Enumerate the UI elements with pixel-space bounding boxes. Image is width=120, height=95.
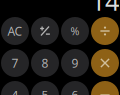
button[interactable]: Divide: [91, 17, 119, 45]
staticText: AC: [7, 23, 22, 39]
button[interactable]: Six: [61, 81, 89, 95]
button[interactable]: Multiply: [91, 49, 119, 77]
button[interactable]: Nine: [61, 49, 89, 77]
staticText: 6: [71, 87, 78, 95]
button[interactable]: Percent: [61, 17, 89, 45]
staticText: 14: [91, 0, 119, 18]
staticText: %: [70, 24, 79, 38]
staticText: 8: [41, 55, 48, 71]
staticText: 4: [11, 87, 18, 95]
button[interactable]: Five: [31, 81, 59, 95]
button[interactable]: Subtract: [91, 81, 119, 95]
button[interactable]: All clear: [1, 17, 29, 45]
button[interactable]: Plus minus: [31, 17, 59, 45]
staticText: 9: [71, 55, 78, 71]
staticText: 5: [41, 87, 48, 95]
button[interactable]: Seven: [1, 49, 29, 77]
button[interactable]: Four: [1, 81, 29, 95]
button[interactable]: Eight: [31, 49, 59, 77]
staticText: 7: [11, 55, 18, 71]
